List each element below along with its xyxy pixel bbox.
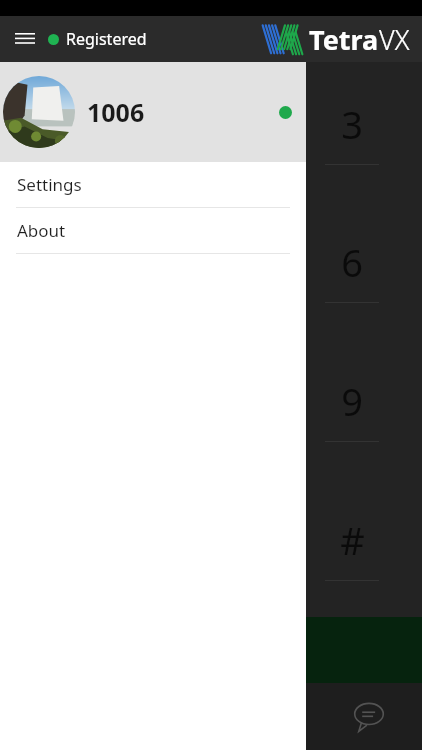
staticText: Tetra (309, 21, 379, 58)
button[interactable]: History (210, 683, 316, 750)
staticText: 3 (341, 98, 363, 150)
button[interactable]: 2 (140, 62, 281, 200)
staticText: 1 (59, 98, 81, 150)
button[interactable]: Call (0, 617, 422, 683)
button[interactable]: 6 (281, 200, 422, 339)
button[interactable]: 9 (281, 339, 422, 478)
staticText: Registered (66, 28, 147, 50)
staticText: 4 (59, 236, 81, 288)
button[interactable]: About (0, 208, 306, 254)
button[interactable]: Settings (0, 162, 306, 208)
staticText: 6 (341, 236, 363, 288)
staticText: 1006 (87, 95, 145, 129)
button[interactable]: # (281, 478, 422, 617)
button[interactable]: 1 (0, 62, 140, 200)
staticText: # (340, 514, 365, 566)
staticText: 1006 . . . (14, 26, 92, 53)
button[interactable]: Messages (316, 683, 422, 750)
button[interactable]: 1006 (0, 62, 306, 162)
button[interactable]: 3 (281, 62, 422, 200)
button[interactable]: Open navigation menu (8, 22, 42, 56)
staticText: VX (379, 21, 410, 58)
staticText: About (17, 219, 66, 242)
button[interactable]: Backspace (362, 27, 400, 51)
staticText: 5 (200, 236, 222, 288)
button[interactable]: 4 (0, 200, 140, 339)
staticText: Settings (17, 173, 82, 196)
staticText: 9 (341, 375, 363, 427)
